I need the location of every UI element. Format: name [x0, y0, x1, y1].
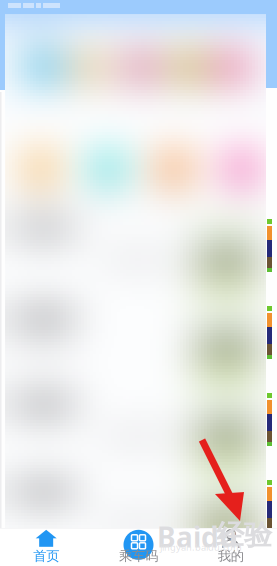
staticText: 经验: [216, 518, 272, 552]
staticText: jingyan.baidu.com: [160, 541, 242, 553]
button[interactable]: 乘车码: [92, 528, 185, 566]
button[interactable]: 我的: [185, 528, 277, 566]
staticText: Baidu: [157, 518, 237, 555]
staticText: 乘车码: [119, 548, 158, 564]
staticText: 我的: [218, 548, 244, 564]
button[interactable]: 首页: [0, 528, 92, 566]
staticText: 首页: [33, 548, 59, 564]
